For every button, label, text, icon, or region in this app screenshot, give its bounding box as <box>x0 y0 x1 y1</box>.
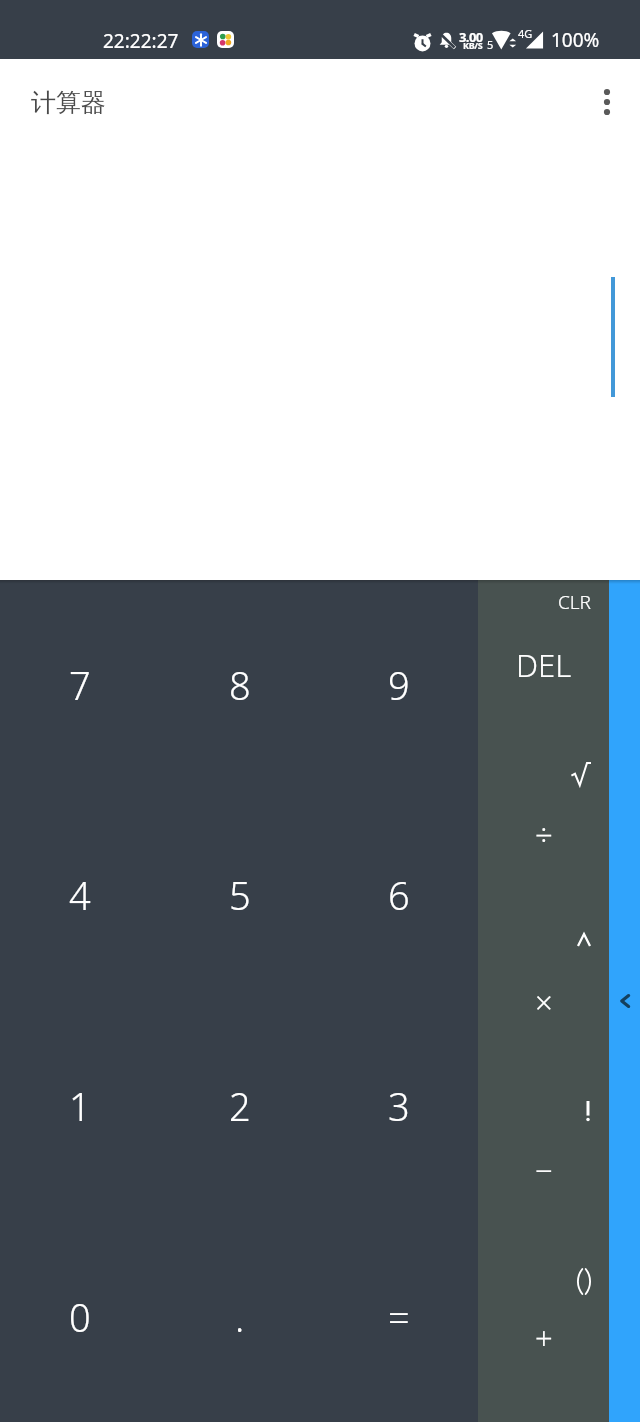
staticText: 9 <box>388 659 410 711</box>
button[interactable]: 6 <box>319 790 478 1000</box>
button[interactable]: 0 <box>0 1211 160 1422</box>
staticText: 7 <box>69 659 91 711</box>
button[interactable]: 1 <box>0 1000 160 1211</box>
button[interactable]: 5 <box>160 790 319 1000</box>
button[interactable]: 8 <box>160 580 319 790</box>
button[interactable]: Multiply, power <box>478 918 609 1086</box>
staticText: 计算器 <box>31 87 106 118</box>
staticText: 5 <box>229 869 251 921</box>
button[interactable]: Open scientific keypad <box>609 580 640 1422</box>
staticText: 22:22:27 <box>103 28 179 54</box>
button[interactable]: Minus, factorial <box>478 1086 609 1254</box>
button[interactable]: More options <box>583 78 631 126</box>
staticText: 2 <box>229 1080 251 1132</box>
staticText: KB/S <box>463 39 483 51</box>
staticText: 3.00 <box>459 28 483 46</box>
button[interactable]: 9 <box>319 580 478 790</box>
staticText: 8 <box>229 659 251 711</box>
button[interactable]: . <box>160 1211 319 1422</box>
staticText: 100% <box>551 27 600 53</box>
staticText: = <box>388 1291 410 1343</box>
staticText: 1 <box>69 1080 91 1132</box>
button[interactable]: Plus, parentheses <box>478 1254 609 1422</box>
staticText: 0 <box>69 1291 91 1343</box>
staticText: 6 <box>388 869 410 921</box>
staticText: 4 <box>69 869 91 921</box>
staticText: + <box>535 1317 553 1359</box>
button[interactable]: Divide, square root <box>478 749 609 918</box>
staticText: 5 <box>487 37 494 52</box>
button[interactable]: = <box>319 1211 478 1422</box>
button[interactable]: 4 <box>0 790 160 1000</box>
button[interactable]: 7 <box>0 580 160 790</box>
staticText: . <box>235 1291 245 1343</box>
staticText: ÷ <box>535 813 553 855</box>
button[interactable]: Delete, long press to clear <box>478 580 609 749</box>
button[interactable]: 3 <box>319 1000 478 1211</box>
staticText: DEL <box>516 644 572 686</box>
staticText: − <box>535 1149 553 1191</box>
staticText: CLR <box>558 589 592 615</box>
staticText: 3 <box>388 1080 410 1132</box>
staticText: × <box>535 981 553 1023</box>
button[interactable]: 2 <box>160 1000 319 1211</box>
staticText: 4G <box>518 26 533 41</box>
